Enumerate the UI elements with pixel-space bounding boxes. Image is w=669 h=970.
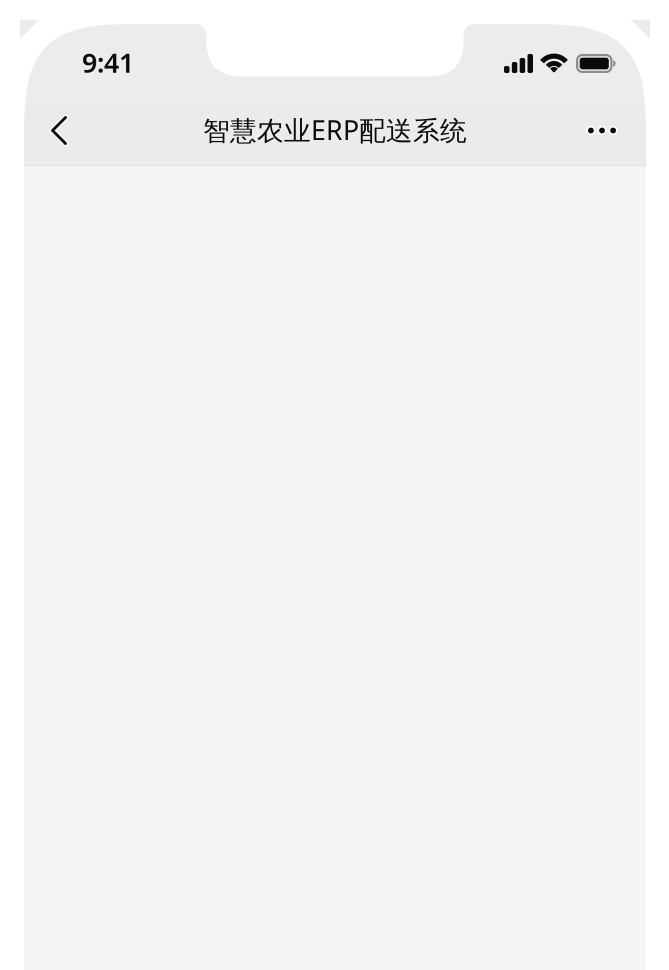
button[interactable]: Back bbox=[51, 100, 105, 160]
staticText: 9:41 bbox=[82, 45, 134, 80]
button[interactable]: More options bbox=[562, 100, 616, 160]
staticText: 智慧农业ERP配送系统 bbox=[203, 112, 467, 148]
